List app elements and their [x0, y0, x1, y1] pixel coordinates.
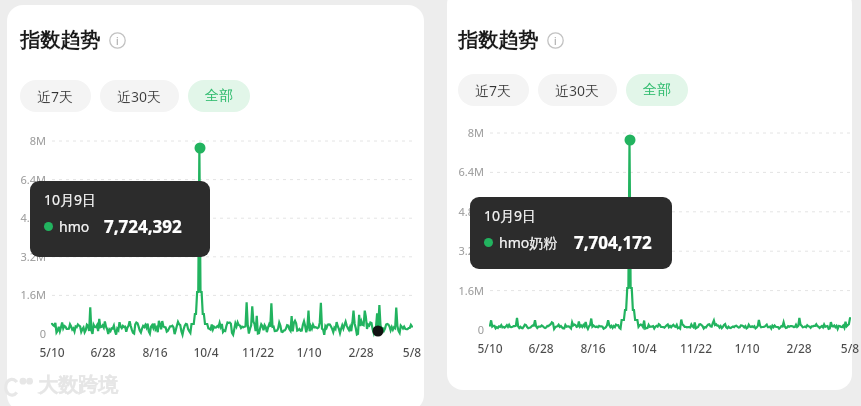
staticText: 8M [4, 133, 46, 148]
staticText: 1/10 [288, 344, 330, 360]
staticText: 近7天 [37, 87, 74, 106]
button[interactable]: 近30天 [100, 80, 179, 112]
staticText: 5/10 [469, 340, 511, 356]
staticText: 8/16 [134, 344, 176, 360]
staticText: 5/10 [31, 344, 73, 360]
staticText: 近30天 [117, 87, 162, 106]
staticText: 8/16 [572, 340, 614, 356]
staticText: 2/28 [340, 344, 382, 360]
staticText: 11/22 [237, 344, 279, 360]
button[interactable]: 信息-右 [547, 32, 564, 49]
staticText: 5/8 [391, 344, 433, 360]
staticText: 指数趋势 [20, 28, 100, 53]
staticText: 0 [442, 322, 484, 337]
staticText: 1.6M [4, 287, 46, 302]
staticText: 大数跨境 [38, 373, 118, 398]
staticText: 10月9日 [44, 190, 97, 209]
staticText: 1.6M [442, 283, 484, 298]
staticText: 全部 [643, 81, 671, 99]
staticText: 7,724,392 [104, 215, 182, 238]
button[interactable]: 全部 [188, 80, 250, 112]
staticText: 3.2M [4, 249, 46, 264]
staticText: i [554, 34, 557, 48]
button[interactable]: 近7天 [458, 74, 529, 106]
staticText: 7,704,172 [574, 231, 652, 254]
staticText: 11/22 [675, 340, 717, 356]
staticText: 4.8M [442, 204, 484, 219]
button[interactable]: 近30天 [538, 74, 617, 106]
staticText: 6/28 [520, 340, 562, 356]
staticText: 3.2M [442, 243, 484, 258]
staticText: 6.4M [4, 172, 46, 187]
button[interactable]: 信息-左 [109, 32, 126, 49]
staticText: 近30天 [555, 81, 600, 100]
staticText: 10/4 [185, 344, 227, 360]
staticText: 全部 [205, 87, 233, 105]
staticText: 6/28 [82, 344, 124, 360]
staticText: 8M [442, 125, 484, 140]
button[interactable]: 近7天 [20, 80, 91, 112]
staticText: hmo [59, 217, 90, 236]
staticText: 5/8 [829, 340, 861, 356]
staticText: 指数趋势 [458, 28, 538, 53]
staticText: i [116, 34, 119, 48]
staticText: 10/4 [623, 340, 665, 356]
staticText: 2/28 [778, 340, 820, 356]
staticText: 10月9日 [484, 206, 537, 225]
staticText: 6.4M [442, 164, 484, 179]
button[interactable]: 全部 [626, 74, 688, 106]
staticText: 1/10 [726, 340, 768, 356]
staticText: 近7天 [475, 81, 512, 100]
staticText: 4.8M [4, 210, 46, 225]
staticText: 0 [4, 326, 46, 341]
staticText: hmo奶粉 [499, 233, 558, 252]
